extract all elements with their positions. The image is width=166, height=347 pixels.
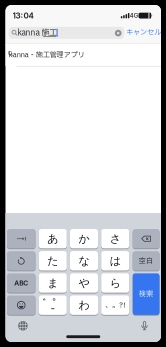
button[interactable]: な [70,251,98,271]
button[interactable]: 空白 [133,251,159,271]
staticText: 検索 [139,289,153,299]
staticText: 空白 [139,256,153,266]
staticText: わ [78,298,89,312]
button[interactable]: 検索 [133,273,159,315]
staticText: あ [47,232,58,246]
button[interactable]: や [70,273,98,293]
staticText: ら [110,276,121,290]
staticText: 、。?! [105,300,125,311]
button[interactable]: さ [101,228,129,249]
staticText: キャンセル [126,27,161,38]
button[interactable] [115,30,121,36]
button[interactable]: あ [39,228,67,249]
staticText: な [78,254,89,268]
button[interactable] [7,251,35,271]
staticText: 4G [130,12,138,19]
button[interactable]: 、。?! [101,295,129,315]
button[interactable]: キャンセル [120,27,166,39]
staticText: kanna - 施工管理アプリ [9,50,85,60]
staticText: ま [47,276,58,290]
button[interactable]: ま [39,273,67,293]
button[interactable]: か [70,228,98,249]
button[interactable] [7,228,35,249]
staticText: は [110,254,121,268]
button[interactable]: kanna 施工 [9,27,124,39]
staticText: ABC [14,279,28,287]
button[interactable]: わ [70,295,98,315]
button[interactable]: ゛゜ [39,295,67,315]
button[interactable]: た [39,251,67,271]
button[interactable]: ABC [7,273,35,293]
button[interactable] [18,321,28,330]
staticText: ゛゜ [43,296,63,311]
staticText: 13:04 [12,11,33,20]
button[interactable]: は [101,251,129,271]
staticText: さ [110,232,121,246]
staticText: kanna 施工 [17,27,57,39]
button[interactable]: kanna - 施工管理アプリ [5,44,161,66]
staticText: か [78,232,89,246]
button[interactable] [140,321,149,330]
button[interactable] [133,228,159,249]
button[interactable] [7,295,35,315]
staticText: た [47,254,58,268]
button[interactable]: ら [101,273,129,293]
staticText: や [78,276,89,290]
